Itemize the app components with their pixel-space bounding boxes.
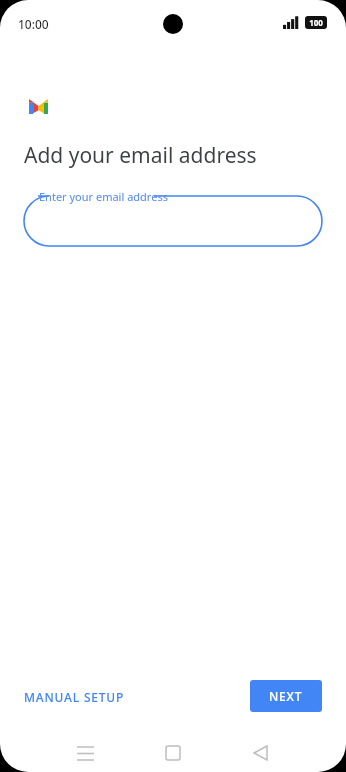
- staticText: 10:00: [18, 16, 49, 32]
- staticText: 100: [309, 17, 323, 28]
- staticText: NEXT: [269, 688, 303, 704]
- staticText: MANUAL SETUP: [24, 689, 125, 705]
- button[interactable]: NEXT: [250, 680, 322, 712]
- button[interactable]: Recent apps: [64, 741, 106, 765]
- button[interactable]: Home: [152, 741, 194, 765]
- button[interactable]: [24, 196, 322, 246]
- button[interactable]: Back: [239, 741, 281, 765]
- staticText: Add your email address: [24, 141, 257, 170]
- staticText: Enter your email address: [39, 189, 168, 204]
- button[interactable]: MANUAL SETUP: [14, 682, 135, 712]
